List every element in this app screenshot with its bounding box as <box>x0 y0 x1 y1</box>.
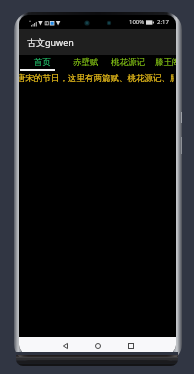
button[interactable]: 滕王阁序 <box>149 55 176 71</box>
staticText: 赤壁赋 <box>73 57 99 68</box>
button[interactable]: 首页 <box>28 55 57 71</box>
staticText: 100% <box>129 18 145 26</box>
staticText: 古文guwen <box>27 36 74 48</box>
button[interactable]: Recents <box>121 337 141 354</box>
staticText: 桃花源记 <box>111 57 145 68</box>
button[interactable]: 桃花源记 <box>105 55 151 71</box>
staticText: 唐宋的节日，这里有两篇赋、桃花源记、滕王阁序等名篇 <box>19 73 174 84</box>
button[interactable]: 古文guwen <box>19 29 176 55</box>
button[interactable]: 赤壁赋 <box>67 55 105 71</box>
button[interactable]: Back <box>55 337 75 354</box>
button[interactable]: Home <box>88 337 108 354</box>
staticText: 首页 <box>34 57 51 68</box>
staticText: 滕王阁序 <box>155 57 176 68</box>
staticText: 2:17 <box>157 18 169 26</box>
